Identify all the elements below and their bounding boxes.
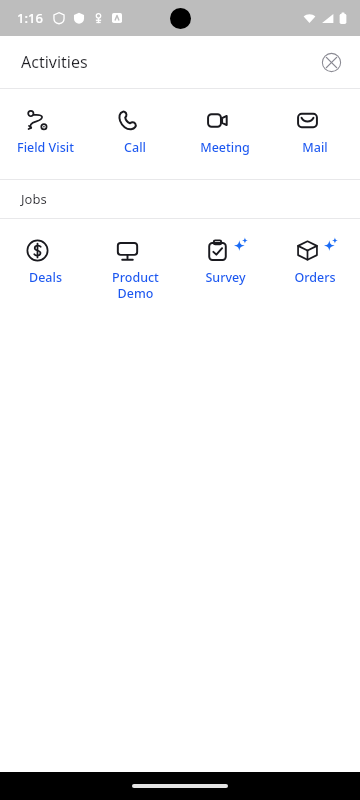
button[interactable]: Mail [270, 89, 360, 179]
staticText: Activities [21, 51, 88, 73]
staticText: Mail [302, 139, 328, 156]
button[interactable]: Survey [180, 219, 270, 309]
button[interactable]: Field Visit [0, 89, 90, 179]
button[interactable]: Product Demo [90, 219, 180, 309]
button[interactable]: Orders [270, 219, 360, 309]
staticText: Jobs [21, 190, 47, 208]
staticText: 1:16 [17, 9, 43, 27]
button[interactable]: Deals [0, 219, 90, 309]
staticText: Product Demo [112, 269, 159, 301]
staticText: Field Visit [17, 139, 74, 156]
button[interactable]: Call [90, 89, 180, 179]
staticText: Survey [205, 269, 246, 286]
button[interactable]: Meeting [180, 89, 270, 179]
button[interactable]: Close [316, 47, 346, 77]
staticText: Meeting [200, 139, 250, 156]
staticText: Call [124, 139, 146, 156]
staticText: Deals [29, 269, 62, 286]
staticText: Orders [294, 269, 336, 286]
